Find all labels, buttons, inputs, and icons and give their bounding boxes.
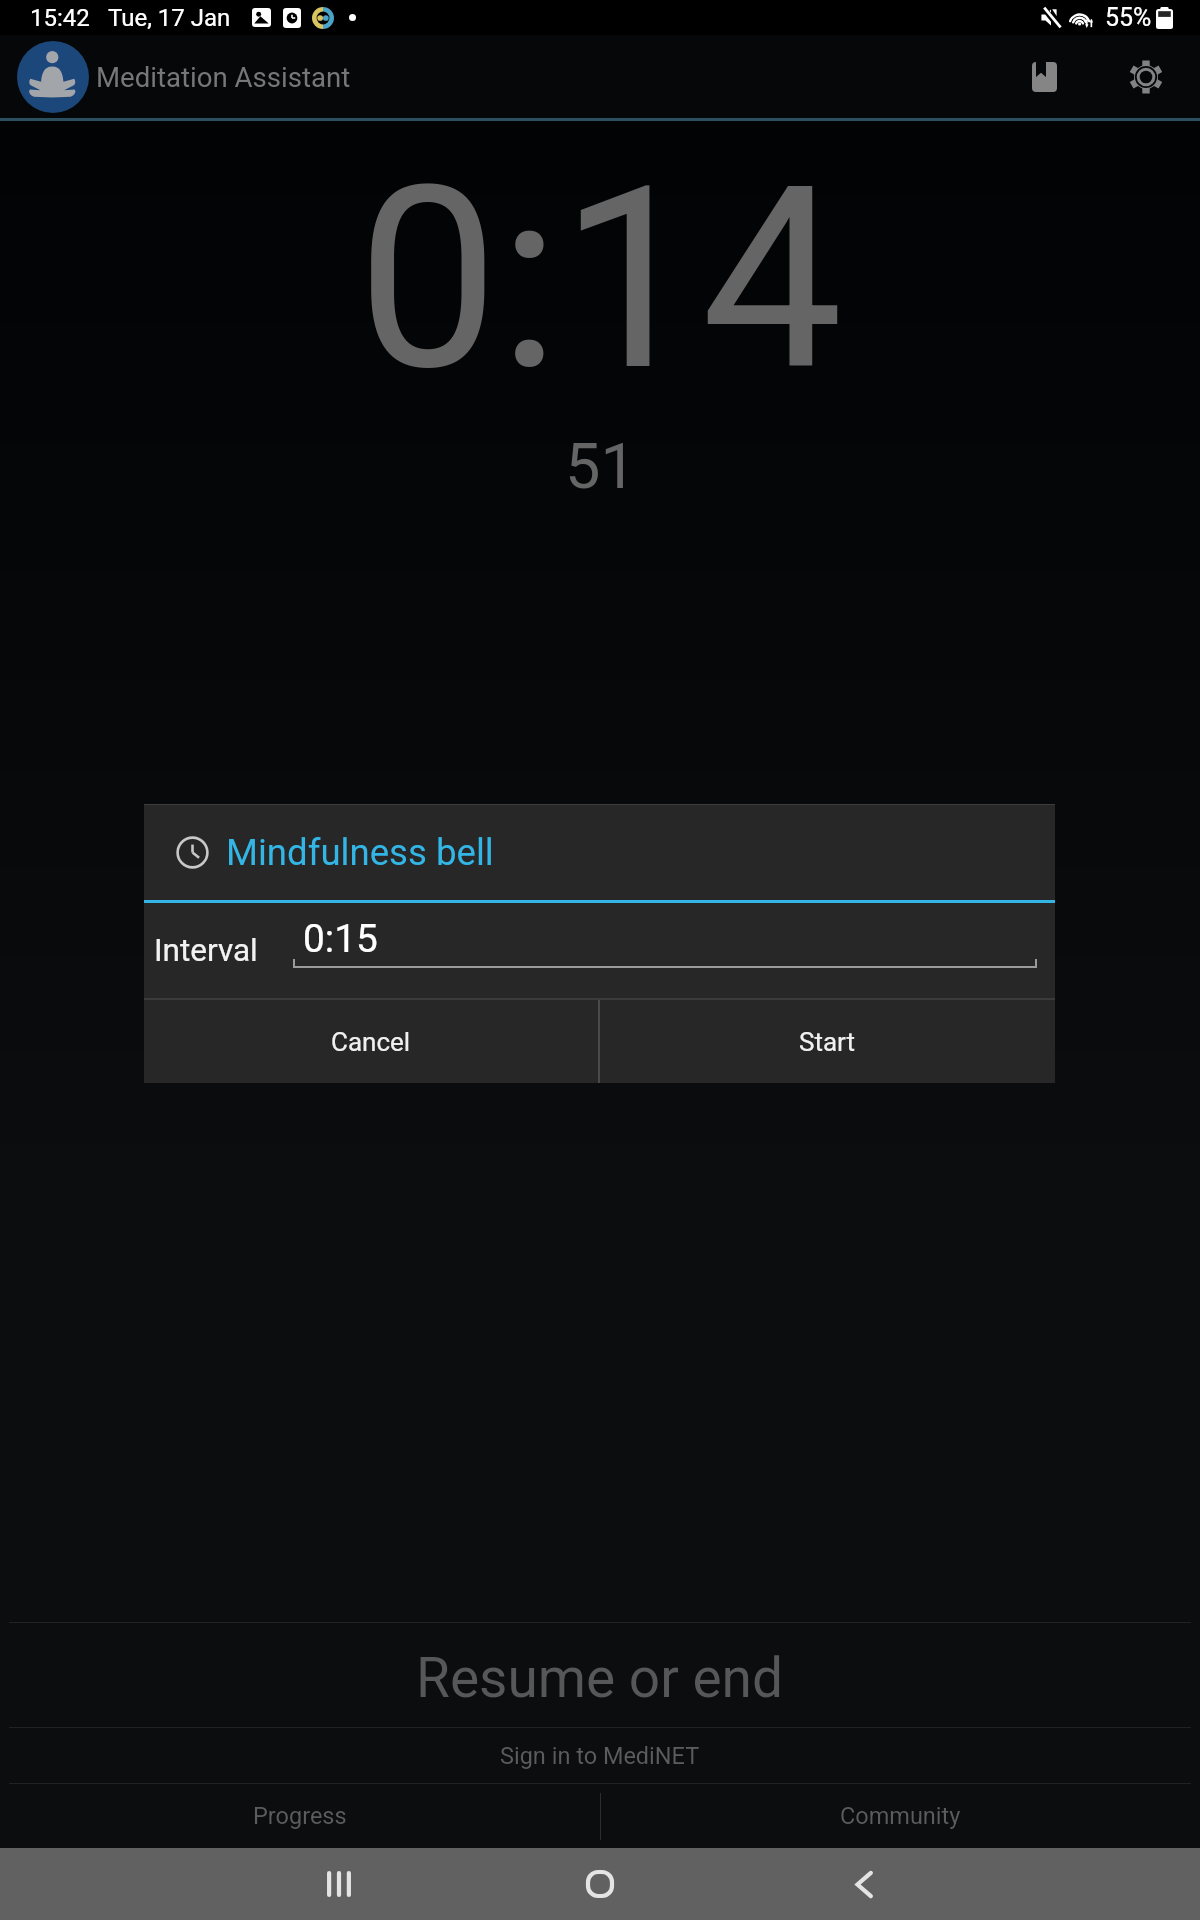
staticText: 15:42 — [30, 4, 90, 32]
staticText: Resume or end — [416, 1646, 784, 1710]
staticText: Mindfulness bell — [226, 831, 494, 874]
staticText: Cancel — [331, 1027, 411, 1057]
staticText: Community — [840, 1802, 961, 1830]
staticText: Start — [799, 1027, 856, 1057]
staticText: Interval — [154, 932, 258, 969]
staticText: 51 — [565, 430, 636, 504]
staticText: 0:15 — [303, 916, 378, 961]
staticText: Sign in to MediNET — [500, 1742, 700, 1770]
staticText: 55% — [1105, 3, 1152, 32]
staticText: Tue, 17 Jan — [108, 4, 231, 32]
button[interactable]: Settings — [1109, 40, 1183, 114]
button[interactable]: Back — [816, 1848, 912, 1920]
button[interactable]: Community — [600, 1784, 1200, 1848]
button[interactable]: Start — [600, 1000, 1055, 1083]
button[interactable]: Progress — [0, 1784, 600, 1848]
staticText: Progress — [253, 1802, 347, 1830]
button[interactable]: Recents — [291, 1848, 387, 1920]
button[interactable]: Sign in to MediNET — [0, 1728, 1200, 1783]
button[interactable]: Home — [552, 1848, 648, 1920]
staticText: Meditation Assistant — [96, 61, 351, 93]
button[interactable]: Cancel — [144, 1000, 598, 1083]
button[interactable]: Bookmarks — [1007, 40, 1081, 114]
button[interactable]: Resume or end — [0, 1623, 1200, 1727]
staticText: 0:14 — [357, 132, 843, 427]
